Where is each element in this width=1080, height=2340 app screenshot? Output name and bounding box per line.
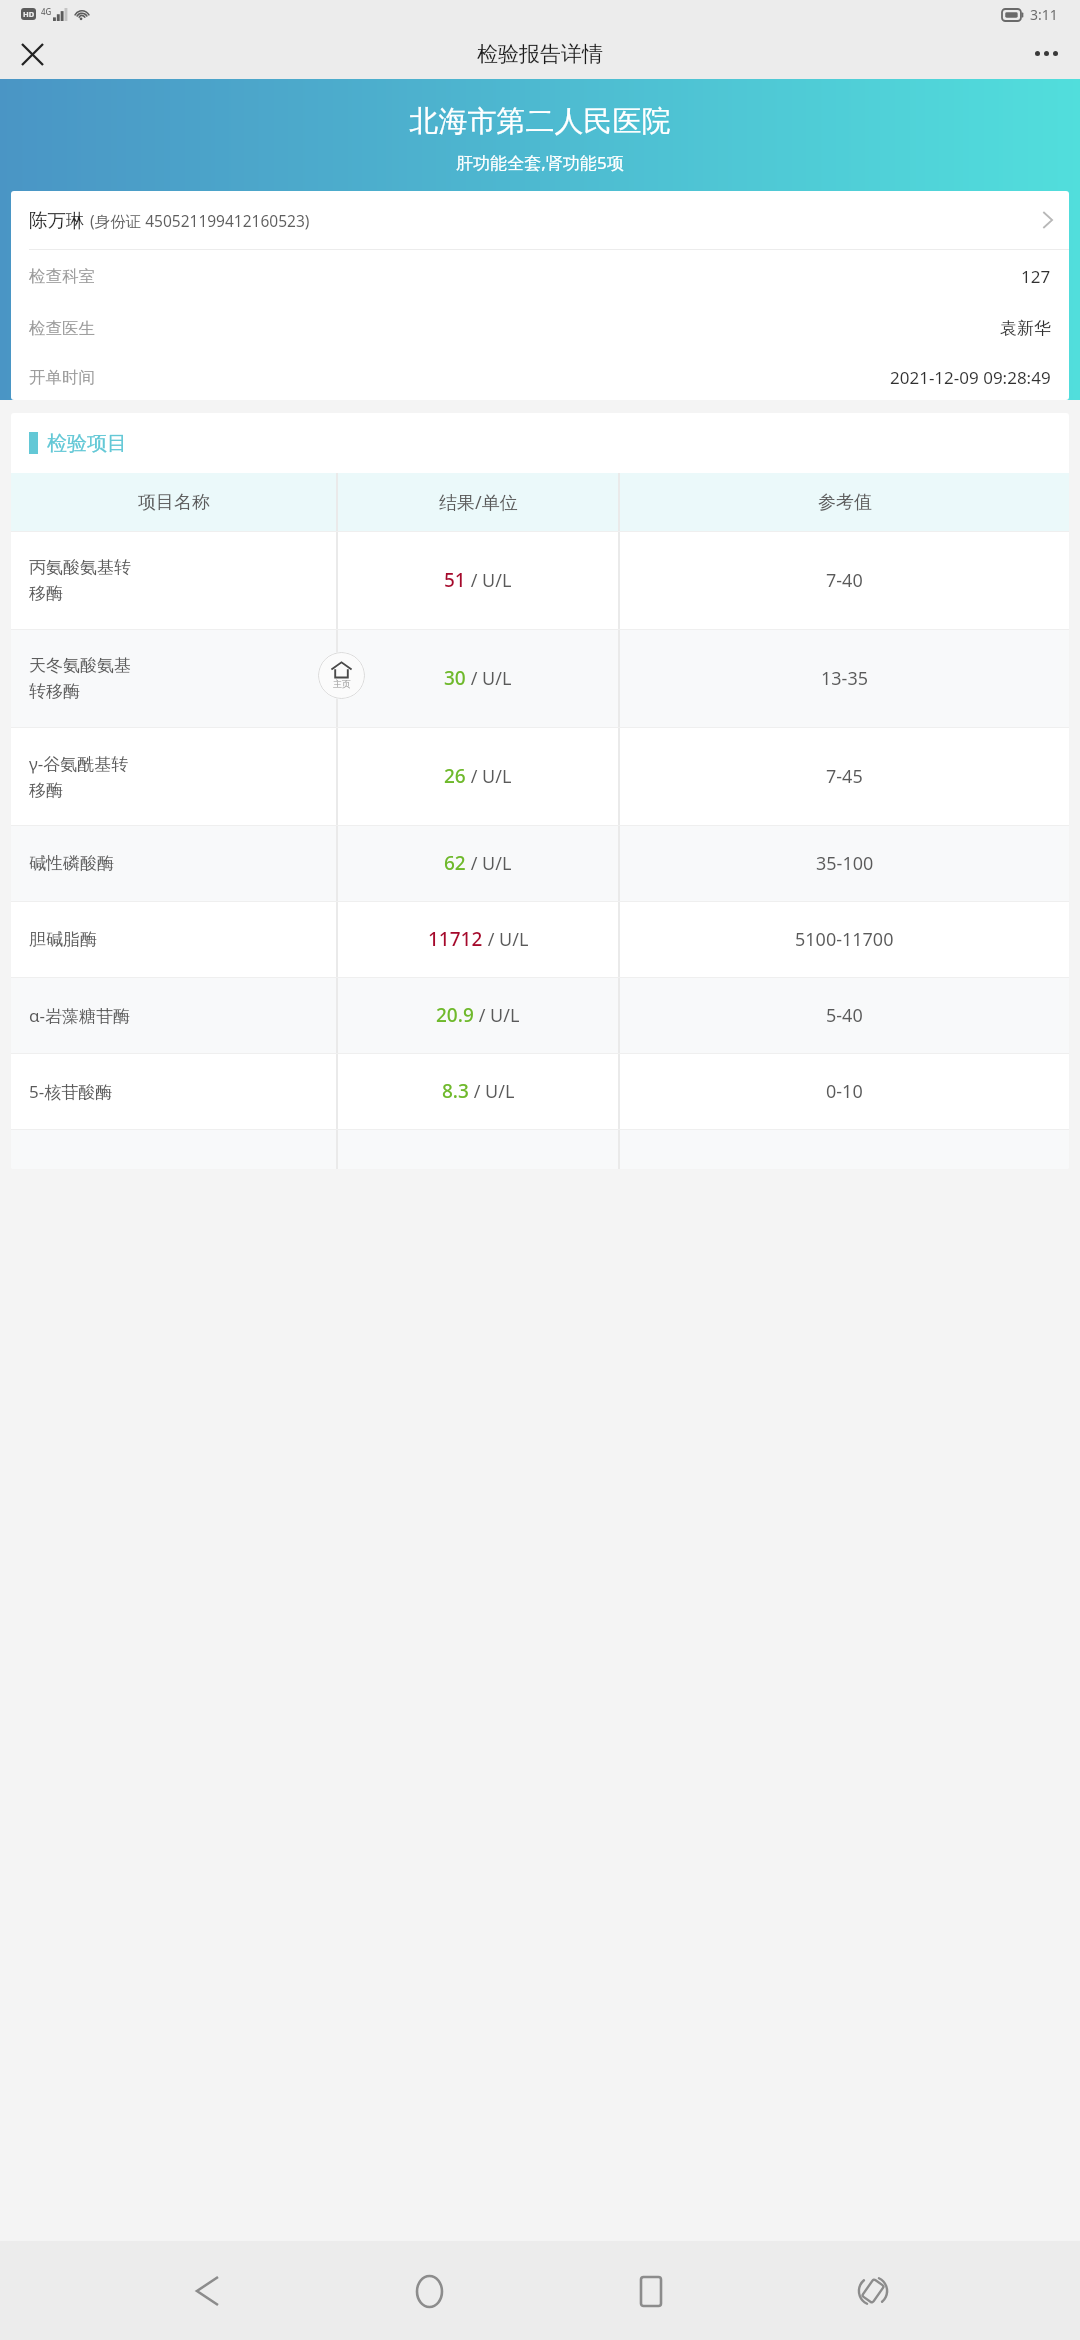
staticText: / U/L [466,851,512,876]
staticText: 开单时间 [29,367,95,388]
button[interactable]: 主页 Home [318,652,365,699]
staticText: γ-谷氨酰基转 移酶 [29,752,129,801]
staticText: 4G [41,6,52,17]
staticText: 丙氨酸氨基转 移酶 [29,557,131,604]
button[interactable]: Back [170,2254,244,2328]
staticText: 袁新华 [1000,318,1051,339]
button[interactable]: Close [8,30,56,78]
staticText: 检查医生 [29,318,95,339]
staticText: / U/L [483,927,529,952]
staticText: 62 [444,850,466,876]
button[interactable]: Recent apps [614,2254,688,2328]
staticText: 陈万琳 [29,209,85,232]
staticText: 26 [444,763,466,789]
staticText: 检验报告详情 [477,41,603,67]
staticText: 13-35 [821,666,868,691]
staticText: 5100-11700 [795,927,894,952]
staticText: 北海市第二人民医院 [0,103,1080,140]
staticText: 检验项目 [47,431,127,456]
staticText: / U/L [469,1079,515,1104]
staticText: HD [23,9,35,19]
staticText: 2021-12-09 09:28:49 [890,366,1051,389]
staticText: / U/L [466,764,512,789]
staticText: 肝功能全套,肾功能5项 [0,151,1080,174]
staticText: 碱性磷酸酶 [29,853,114,874]
staticText: 7-45 [826,764,863,789]
staticText: 5-40 [826,1003,863,1028]
staticText: (身份证 450521199412160523) [90,210,310,231]
staticText: / U/L [474,1003,520,1028]
staticText: 7-40 [826,568,863,593]
staticText: α-岩藻糖苷酶 [29,1004,131,1027]
staticText: 结果/单位 [439,490,518,515]
staticText: 检查科室 [29,266,95,287]
button[interactable]: More options [1020,28,1072,79]
staticText: 8.3 [442,1078,469,1104]
staticText: 30 [444,665,466,691]
staticText: 项目名称 [138,491,210,514]
staticText: 天冬氨酸氨基 转移酶 [29,655,131,702]
staticText: 20.9 [436,1002,474,1028]
staticText: 主页 [333,678,351,689]
staticText: / U/L [466,666,512,691]
button[interactable]: 陈万琳 [11,191,1069,249]
button[interactable]: Rotate screen [836,2254,910,2328]
staticText: 127 [1021,265,1051,288]
staticText: 51 [444,567,466,593]
staticText: 35-100 [816,851,874,876]
staticText: 0-10 [826,1079,863,1104]
staticText: 5-核苷酸酶 [29,1080,113,1103]
staticText: 参考值 [818,491,872,514]
staticText: 3:11 [1030,5,1058,24]
button[interactable]: Home [392,2254,466,2328]
staticText: 11712 [428,926,483,952]
staticText: 胆碱脂酶 [29,929,97,950]
staticText: / U/L [466,568,512,593]
